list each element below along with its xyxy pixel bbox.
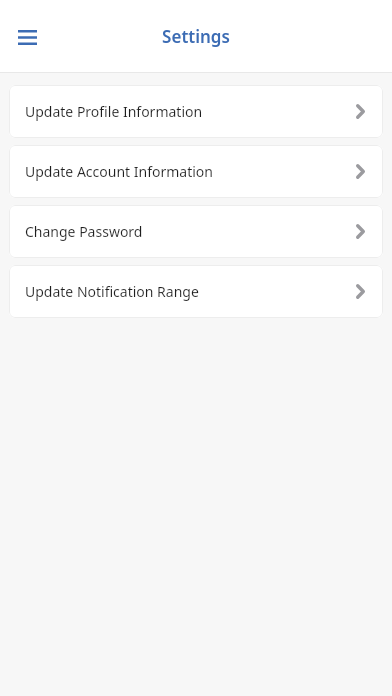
staticText: Settings (0, 25, 392, 48)
button[interactable]: Open navigation menu (8, 18, 46, 56)
staticText: Change Password (25, 222, 143, 241)
button[interactable]: Change Password (9, 205, 383, 258)
button[interactable]: Update Profile Information (9, 85, 383, 138)
button[interactable]: Update Notification Range (9, 265, 383, 318)
button[interactable]: Update Account Information (9, 145, 383, 198)
staticText: Update Notification Range (25, 282, 199, 301)
staticText: Update Profile Information (25, 102, 203, 121)
staticText: Update Account Information (25, 162, 213, 181)
